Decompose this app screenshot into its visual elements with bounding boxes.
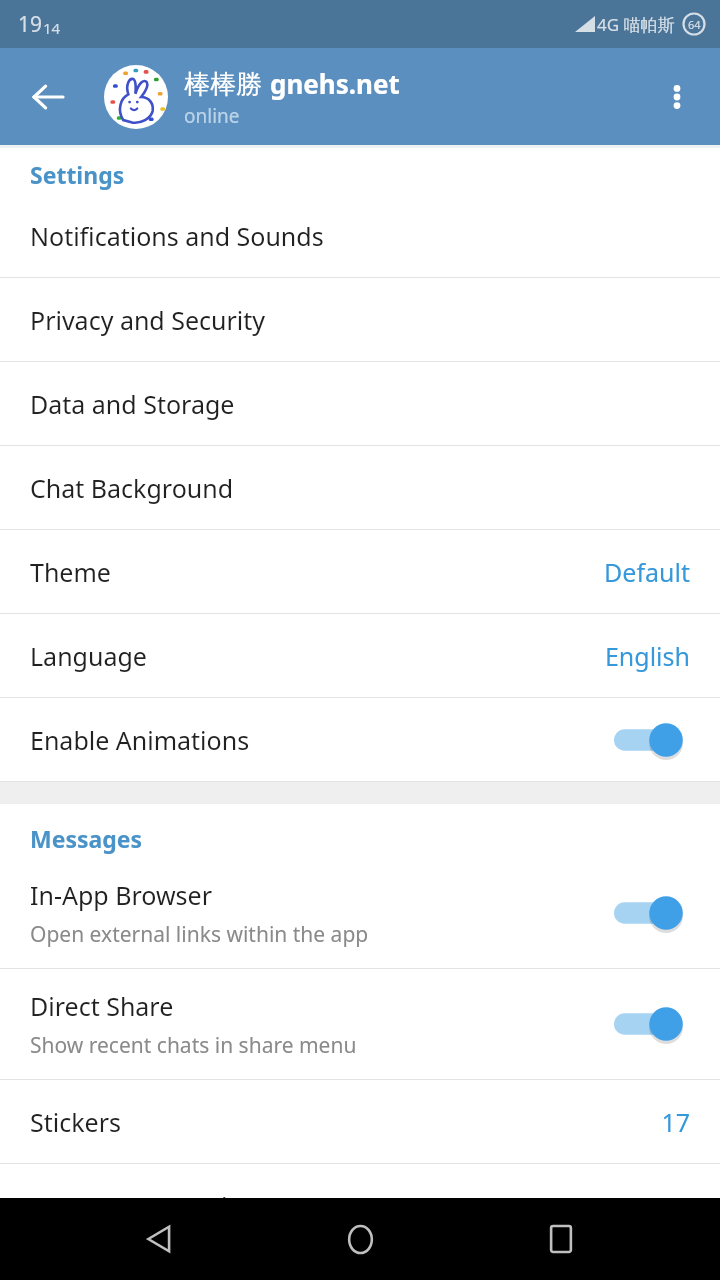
staticText: Privacy and Security xyxy=(30,303,266,337)
staticText: Theme xyxy=(30,555,111,589)
button[interactable]: In-App Browser xyxy=(0,858,720,968)
button[interactable]: Language xyxy=(0,614,720,697)
staticText: Language xyxy=(30,639,147,673)
button[interactable]: Stickers xyxy=(0,1080,720,1163)
staticText: In-App Browser xyxy=(30,878,212,912)
staticText: 棒棒勝 xyxy=(184,68,262,101)
button[interactable]: Chat Background xyxy=(0,446,720,529)
staticText: Stickers xyxy=(30,1105,121,1139)
button[interactable]: Back xyxy=(14,63,82,131)
button[interactable]: Data and Storage xyxy=(0,362,720,445)
button[interactable]: More options xyxy=(646,66,708,128)
staticText: Notifications and Sounds xyxy=(30,219,324,253)
button[interactable]: Privacy and Security xyxy=(0,278,720,361)
staticText: Direct Share xyxy=(30,989,174,1023)
staticText: Messages xyxy=(30,823,143,854)
staticText: 14 xyxy=(43,18,61,38)
staticText: Chat Background xyxy=(30,471,234,505)
staticText: Open external links within the app xyxy=(30,920,369,949)
staticText: English xyxy=(604,639,690,673)
staticText: Settings xyxy=(30,159,125,190)
staticText: Messages Text Size xyxy=(30,1189,254,1223)
button[interactable]: Direct Share xyxy=(0,969,720,1079)
button[interactable]: Messages Text Size xyxy=(0,1164,720,1247)
staticText: Enable Animations xyxy=(30,723,250,757)
button[interactable]: Theme xyxy=(0,530,720,613)
staticText: online xyxy=(184,103,240,129)
staticText: gnehs.net xyxy=(270,66,400,101)
button[interactable]: Notifications and Sounds xyxy=(0,194,720,277)
staticText: 64 xyxy=(688,17,701,32)
staticText: 19 xyxy=(18,10,43,39)
staticText: Data and Storage xyxy=(30,387,235,421)
staticText: Show recent chats in share menu xyxy=(30,1031,357,1060)
button[interactable]: Recent apps xyxy=(519,1198,603,1280)
button[interactable]: Home xyxy=(318,1198,402,1280)
button[interactable]: Back xyxy=(117,1198,201,1280)
staticText: 17 xyxy=(661,1105,690,1139)
button[interactable]: 棒棒勝 xyxy=(104,65,610,129)
staticText: 16 xyxy=(661,1189,690,1223)
staticText: 4G 喵帕斯 xyxy=(597,13,675,36)
button[interactable]: Enable Animations xyxy=(0,698,720,781)
staticText: Default xyxy=(604,555,690,589)
